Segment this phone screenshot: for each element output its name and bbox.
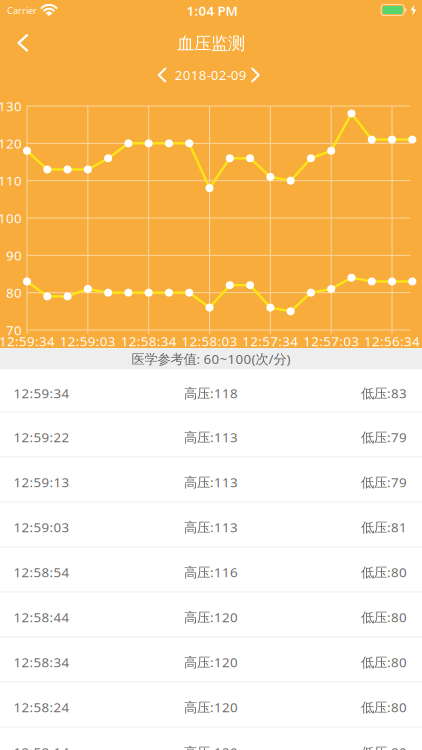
staticText: 低压:79 <box>361 428 407 446</box>
staticText: 12:57:34 <box>242 332 298 350</box>
staticText: 12:59:13 <box>13 473 69 491</box>
staticText: 12:59:03 <box>13 518 69 536</box>
staticText: 80 <box>6 284 22 301</box>
staticText: 低压:81 <box>361 518 407 536</box>
staticText: 12:58:34 <box>13 653 69 671</box>
staticText: 低压:83 <box>361 384 407 402</box>
staticText: 高压:118 <box>184 384 238 402</box>
staticText: 血压监测 <box>177 33 245 54</box>
staticText: 低压:80 <box>361 698 407 716</box>
staticText: 2018-02-09 <box>175 66 247 84</box>
staticText: 120 <box>0 134 22 152</box>
staticText: 低压:79 <box>361 473 407 491</box>
staticText: 130 <box>0 97 22 115</box>
staticText: 12:59:03 <box>60 332 116 350</box>
staticText: 12:58:24 <box>13 698 69 716</box>
staticText: 12:58:54 <box>13 563 69 581</box>
staticText: 12:58:34 <box>121 332 177 350</box>
staticText: 1:04 PM <box>186 2 237 19</box>
staticText: 高压:120 <box>184 698 238 716</box>
staticText: 12:59:34 <box>0 332 55 350</box>
staticText: 低压:80 <box>361 563 407 581</box>
staticText: 12:56:34 <box>364 332 420 350</box>
staticText: 12:57:03 <box>303 332 359 350</box>
staticText: 低压:80 <box>361 743 407 750</box>
staticText: 高压:113 <box>184 428 238 446</box>
staticText: 高压:116 <box>184 563 238 581</box>
staticText: 12:58:03 <box>181 332 237 350</box>
staticText: 高压:120 <box>184 743 238 750</box>
staticText: 医学参考值: 60~100(次/分) <box>131 350 290 368</box>
staticText: Carrier <box>7 4 37 17</box>
button[interactable] <box>147 60 177 90</box>
staticText: 低压:80 <box>361 608 407 626</box>
button[interactable] <box>240 60 270 90</box>
staticText: 12:58:14 <box>13 743 69 750</box>
staticText: 100 <box>0 209 22 227</box>
staticText: 110 <box>0 172 22 189</box>
staticText: 高压:113 <box>184 473 238 491</box>
staticText: 高压:113 <box>184 518 238 536</box>
staticText: 70 <box>6 321 22 339</box>
staticText: 12:59:22 <box>13 428 69 446</box>
staticText: 90 <box>6 246 22 264</box>
staticText: 高压:120 <box>184 653 238 671</box>
staticText: 低压:80 <box>361 653 407 671</box>
button[interactable] <box>0 21 44 65</box>
staticText: 12:58:44 <box>13 608 69 626</box>
staticText: 高压:120 <box>184 608 238 626</box>
staticText: 12:59:34 <box>13 384 69 402</box>
